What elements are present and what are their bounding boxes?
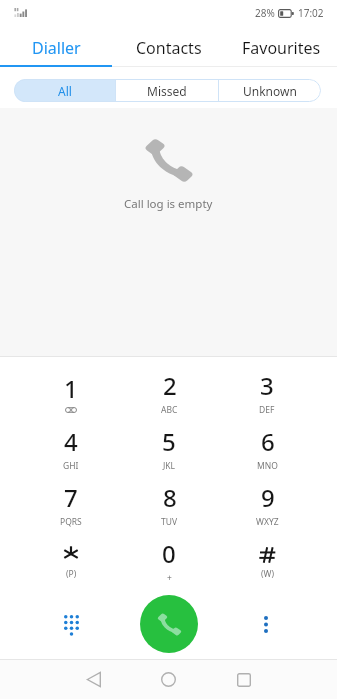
staticText: + (167, 572, 172, 584)
staticText: Call log is empty (124, 196, 213, 212)
button[interactable]: 8 (120, 476, 218, 532)
button[interactable]: 3 (218, 364, 316, 420)
staticText: TUV (161, 516, 178, 528)
button[interactable]: (W) (218, 532, 316, 588)
staticText: 0 (162, 537, 176, 570)
staticText: DEF (259, 404, 275, 416)
staticText: 4 (64, 425, 78, 458)
staticText: 5 (162, 425, 176, 458)
staticText: 1 (64, 372, 78, 405)
button[interactable]: Unknown (219, 79, 321, 102)
staticText: 9 (261, 481, 275, 514)
button[interactable]: Dialler (0, 25, 113, 67)
staticText: Unknown (243, 83, 297, 99)
staticText: 17:02 (298, 6, 324, 20)
staticText: ABC (161, 404, 178, 416)
staticText: (P) (66, 568, 77, 580)
staticText: 2 (163, 369, 177, 402)
button[interactable]: 6 (218, 420, 316, 476)
button[interactable]: 0 (120, 532, 218, 588)
staticText: Favourites (242, 37, 321, 59)
staticText: 8 (163, 481, 177, 514)
staticText: 3 (260, 369, 274, 402)
staticText: 6 (261, 425, 275, 458)
button[interactable]: Call (140, 595, 198, 653)
staticText: (W) (261, 568, 275, 580)
button[interactable]: 9 (218, 476, 316, 532)
button[interactable]: Back (56, 660, 131, 699)
button[interactable]: 1 (21, 364, 120, 420)
button[interactable]: All (14, 79, 115, 102)
staticText: JKL (163, 460, 176, 472)
staticText: Contacts (136, 37, 202, 59)
button[interactable]: 5 (120, 420, 218, 476)
button[interactable]: 7 (21, 476, 120, 532)
button[interactable]: More options (230, 596, 302, 652)
button[interactable]: 2 (120, 364, 218, 420)
button[interactable]: Contacts (113, 25, 225, 67)
staticText: Missed (147, 83, 187, 99)
staticText: GHI (63, 460, 79, 472)
staticText: Dialler (32, 37, 81, 59)
button[interactable]: 4 (21, 420, 120, 476)
staticText: All (58, 83, 72, 99)
button[interactable]: Recents (206, 660, 281, 699)
staticText: 28% (255, 6, 275, 20)
button[interactable]: Missed (116, 79, 218, 102)
button[interactable]: Hide dialpad (35, 596, 107, 652)
staticText: MNO (257, 460, 278, 472)
staticText: WXYZ (256, 516, 279, 528)
staticText: 7 (64, 481, 78, 514)
button[interactable]: (P) (21, 532, 120, 588)
staticText: PQRS (60, 516, 82, 528)
button[interactable]: Home (131, 660, 206, 699)
button[interactable]: Favourites (225, 25, 337, 67)
